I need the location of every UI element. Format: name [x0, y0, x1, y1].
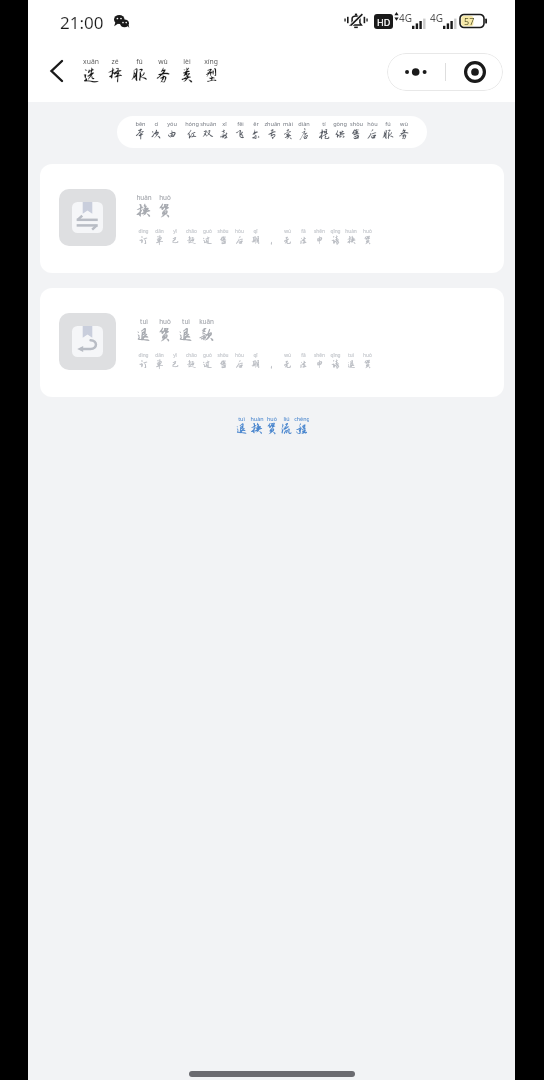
staticText: 类 [179, 67, 195, 84]
staticText: 店 [298, 128, 310, 141]
staticText: hòu [235, 228, 244, 235]
staticText: shēn [314, 228, 325, 235]
staticText: 换 [136, 202, 151, 218]
staticText: 后 [235, 359, 244, 369]
staticText: tuì [238, 415, 245, 422]
staticText: wù [400, 120, 408, 128]
staticText: 本 [134, 128, 146, 141]
staticText: 次 [150, 128, 162, 141]
staticText: 法 [299, 359, 308, 369]
staticText: ěr [253, 120, 259, 128]
staticText: huàn [345, 228, 357, 235]
staticText: 请 [331, 359, 340, 369]
button[interactable]: běn [117, 116, 427, 148]
staticText: 已 [171, 235, 180, 245]
staticText: diàn [298, 120, 310, 128]
staticText: 退 [347, 359, 356, 369]
staticText: 超 [187, 359, 196, 369]
staticText: 单 [155, 359, 164, 369]
staticText: wú [284, 352, 291, 359]
staticText: dān [155, 228, 164, 235]
staticText: yǐ [173, 352, 177, 359]
staticText: qī [253, 228, 258, 235]
staticText: dìng [138, 352, 149, 359]
other: More [387, 54, 445, 90]
staticText: 申 [315, 359, 324, 369]
staticText: qǐng [330, 352, 341, 359]
staticText: 无 [283, 235, 292, 245]
staticText: fēi [237, 120, 244, 128]
staticText: xǐ [222, 120, 227, 128]
staticText: fú [385, 120, 391, 128]
staticText: tuì [140, 317, 148, 326]
staticText: huàn [250, 415, 264, 422]
button[interactable]: tuì [40, 288, 504, 397]
staticText: 务 [398, 128, 410, 141]
staticText: dān [155, 352, 164, 359]
staticText: 流 [280, 422, 293, 436]
staticText: guò [203, 352, 212, 359]
staticText: 换 [347, 235, 356, 245]
staticText: 57 [464, 15, 475, 27]
staticText: 过 [203, 235, 212, 245]
staticText: 程 [295, 422, 308, 436]
staticText: lèi [183, 57, 191, 66]
staticText: huàn [136, 193, 152, 202]
staticText: 专 [266, 128, 278, 141]
staticText: wù [158, 57, 168, 66]
staticText: ， [267, 359, 276, 369]
staticText: tuì [348, 352, 354, 359]
staticText: 21:00 [60, 11, 104, 34]
staticText: mài [283, 120, 293, 128]
staticText: 4G [399, 11, 412, 25]
button[interactable]: Back [38, 53, 74, 89]
other: Close [446, 53, 503, 91]
staticText: 择 [107, 67, 123, 84]
staticText: shòu [350, 120, 363, 128]
staticText: guò [203, 228, 212, 235]
staticText: HD [377, 16, 391, 28]
staticText: 货 [157, 326, 172, 342]
staticText: qī [253, 352, 258, 359]
staticText: 退 [136, 326, 151, 342]
staticText: kuǎn [199, 317, 214, 326]
staticText: huò [267, 415, 277, 422]
staticText: 无 [283, 359, 292, 369]
staticText: 货 [363, 359, 372, 369]
button[interactable]: huàn [40, 164, 504, 273]
staticText: 后 [235, 235, 244, 245]
staticText: cì [154, 120, 159, 128]
staticText: zhuān [264, 120, 280, 128]
staticText: 双 [202, 128, 214, 141]
button[interactable]: tuì [226, 411, 317, 440]
staticText: huò [159, 193, 171, 202]
staticText: 换 [250, 422, 263, 436]
staticText: 尔 [250, 128, 262, 141]
staticText: 请 [331, 235, 340, 245]
staticText: 期 [251, 359, 260, 369]
staticText: shuāng [200, 120, 216, 128]
staticText: qǐng [330, 228, 341, 235]
staticText: shòu [217, 228, 229, 235]
staticText: 超 [187, 235, 196, 245]
staticText: 售 [350, 128, 362, 141]
staticText: fǎ [301, 228, 306, 235]
staticText: dìng [138, 228, 149, 235]
staticText: zé [111, 57, 119, 66]
staticText: hòu [367, 120, 378, 128]
staticText: 4G [430, 11, 443, 25]
staticText: xuǎn [83, 57, 99, 66]
staticText: 已 [171, 359, 180, 369]
staticText: chāo [186, 228, 197, 235]
staticText: fú [136, 57, 143, 66]
staticText: 售 [219, 235, 228, 245]
staticText: liú [283, 415, 290, 422]
button[interactable]: More [387, 53, 503, 91]
staticText: 型 [203, 67, 219, 84]
staticText: 订 [139, 235, 148, 245]
staticText: 货 [157, 202, 172, 218]
staticText: chāo [186, 352, 197, 359]
staticText: yóu [167, 120, 177, 128]
staticText: 单 [155, 235, 164, 245]
staticText: gòng [333, 120, 347, 128]
